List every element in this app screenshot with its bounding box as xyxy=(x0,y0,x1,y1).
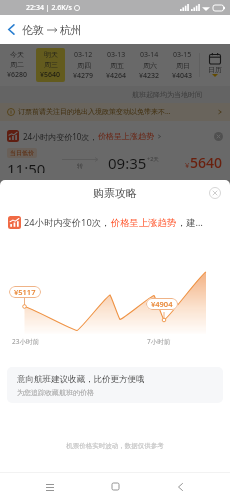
button[interactable]: 03-12 xyxy=(69,48,98,82)
button[interactable]: 明天 xyxy=(36,48,65,82)
staticText: 今天 xyxy=(10,50,24,59)
staticText: 09:35 xyxy=(108,153,147,173)
staticText: 订票前请关注目的地出入境政策变动以免带来不… xyxy=(18,107,217,117)
staticText: ¥4232 xyxy=(139,71,160,81)
button[interactable]: 订票前请关注目的地出入境政策变动以免带来不… xyxy=(0,103,230,121)
staticText: ¥4904 xyxy=(151,299,173,309)
staticText: 03-15 xyxy=(173,50,192,60)
staticText: ¥4264 xyxy=(106,71,127,81)
button[interactable]: 03-13 xyxy=(102,48,131,82)
staticText: 22:34 | 2.6K/s xyxy=(26,3,72,13)
staticText: 7小时前 xyxy=(147,337,171,346)
button[interactable]: 意向航班建议收藏，比价更方便哦 xyxy=(7,367,223,403)
staticText: 03-12 xyxy=(74,50,93,60)
staticText: 03-14 xyxy=(140,50,159,60)
button[interactable]: 03-14 xyxy=(135,48,164,82)
staticText: 周四 xyxy=(77,61,91,70)
staticText: 周五 xyxy=(110,61,124,70)
staticText: ¥ xyxy=(185,160,190,170)
staticText: 明天 xyxy=(44,50,58,59)
button[interactable]: Home xyxy=(100,473,130,500)
button[interactable]: Back xyxy=(165,473,195,500)
staticText: 购票攻略 xyxy=(93,186,137,200)
staticText: ¥5640 xyxy=(40,70,61,80)
staticText: ¥5117 xyxy=(14,287,36,297)
staticText: 周三 xyxy=(44,60,58,69)
staticText: 周日 xyxy=(176,61,190,70)
staticText: 转 xyxy=(77,162,83,170)
staticText: 伦敦 xyxy=(22,23,44,37)
staticText: 23小时前 xyxy=(12,337,39,346)
staticText: 杭州 xyxy=(60,23,82,37)
button[interactable]: Close xyxy=(207,185,223,201)
staticText: 周六 xyxy=(143,61,157,70)
staticText: ，建… xyxy=(177,216,203,229)
staticText: 周二 xyxy=(10,60,24,69)
staticText: 03-13 xyxy=(107,50,126,60)
button[interactable]: Recent apps xyxy=(35,473,65,500)
staticText: ¥4043 xyxy=(172,71,193,81)
staticText: ¥4279 xyxy=(73,71,94,81)
staticText: 价格呈上涨趋势 xyxy=(98,131,154,141)
staticText: 24小时内变价10次， xyxy=(23,131,98,142)
staticText: ¥6280 xyxy=(7,70,28,80)
button[interactable]: 日历 xyxy=(200,44,230,86)
staticText: 当日低价 xyxy=(10,149,34,157)
button[interactable]: 03-15 xyxy=(168,48,197,82)
staticText: 机票价格实时波动，数据仅供参考 xyxy=(0,442,230,450)
staticText: 24小时内变价10次， xyxy=(24,216,111,229)
staticText: 为您追踪收藏航班的价格 xyxy=(17,388,94,397)
staticText: 意向航班建议收藏，比价更方便哦 xyxy=(17,374,145,385)
button[interactable]: Back xyxy=(0,15,22,44)
staticText: 价格呈上涨趋势 xyxy=(111,217,177,229)
button[interactable]: 今天 xyxy=(2,48,32,82)
staticText: +2天 xyxy=(147,155,159,163)
staticText: 航班起降均为当地时间 xyxy=(132,90,202,99)
staticText: 11:50 xyxy=(7,159,46,173)
staticText: 5640 xyxy=(190,153,223,172)
staticText: 日历 xyxy=(208,65,222,74)
